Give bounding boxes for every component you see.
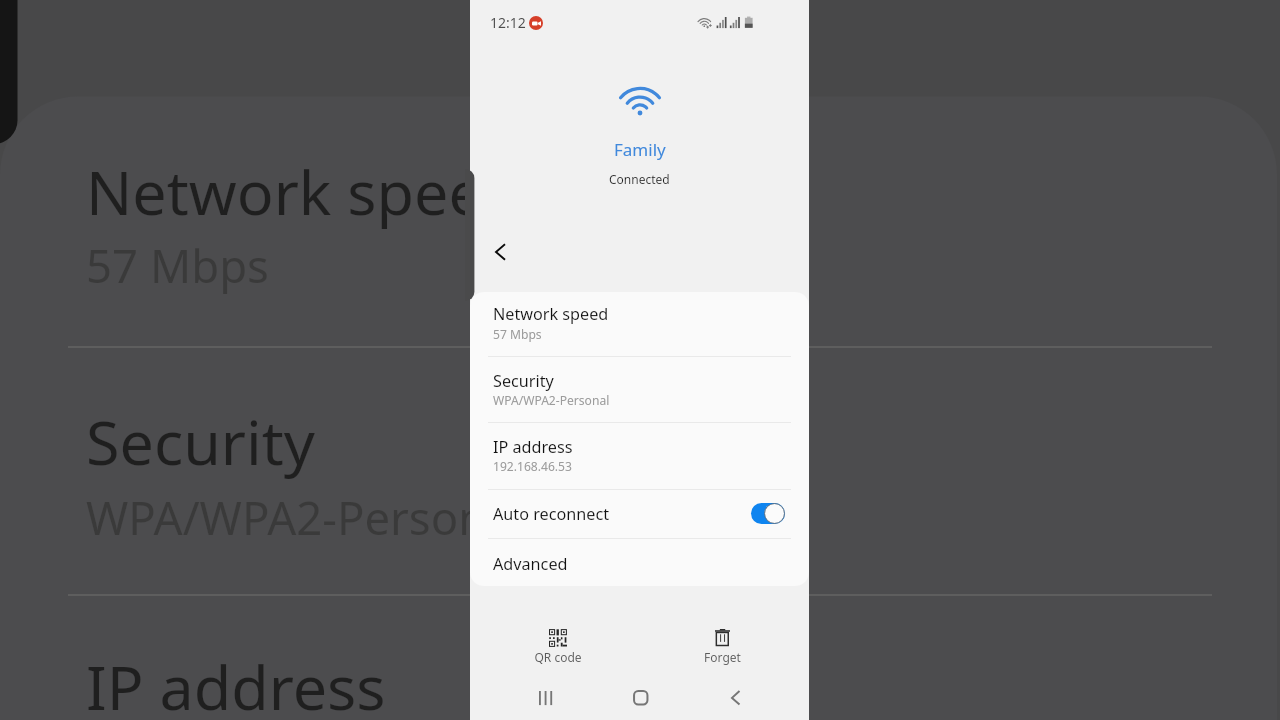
staticText: Network speed bbox=[86, 150, 521, 233]
button[interactable]: Advanced bbox=[470, 538, 809, 586]
button[interactable]: Security bbox=[470, 356, 809, 422]
staticText: QR code bbox=[534, 649, 582, 665]
button[interactable]: Back bbox=[716, 677, 764, 719]
staticText: Security bbox=[86, 400, 315, 483]
staticText: WPA/WPA2-Personal bbox=[493, 392, 610, 408]
button[interactable]: Forget bbox=[682, 619, 762, 667]
button[interactable]: IP address bbox=[470, 422, 809, 489]
staticText: 12:12 bbox=[490, 13, 526, 32]
button[interactable]: Home bbox=[617, 676, 665, 718]
staticText: 57 Mbps bbox=[493, 326, 542, 342]
staticText: Forget bbox=[704, 649, 741, 665]
staticText: 57 Mbps bbox=[86, 234, 269, 296]
button[interactable]: Auto reconnect bbox=[470, 489, 809, 539]
staticText: Auto reconnect bbox=[493, 503, 609, 525]
staticText: Network speed bbox=[493, 303, 609, 325]
button[interactable]: Network speed bbox=[470, 292, 809, 356]
button[interactable]: Recent apps bbox=[523, 677, 571, 719]
staticText: WPA/WPA2-Personal bbox=[86, 486, 524, 548]
staticText: Advanced bbox=[493, 553, 568, 575]
staticText: IP address bbox=[493, 436, 573, 458]
button[interactable]: QR code bbox=[518, 619, 598, 667]
staticText: Security bbox=[493, 370, 554, 392]
staticText: Connected bbox=[609, 171, 670, 187]
staticText: IP address bbox=[86, 645, 386, 720]
staticText: Family bbox=[614, 138, 666, 161]
button[interactable]: Back bbox=[473, 229, 519, 275]
staticText: 192.168.46.53 bbox=[493, 458, 572, 474]
